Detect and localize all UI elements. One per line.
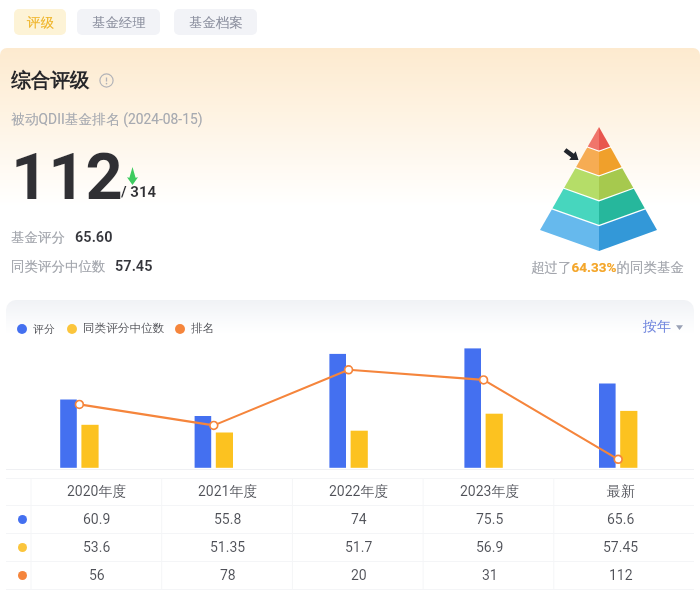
staticText: 评分 <box>33 322 55 336</box>
staticText: / 314 <box>121 183 157 201</box>
staticText: 2022年度 <box>329 483 389 501</box>
staticText: 排名 <box>191 321 215 336</box>
button[interactable]: 51.35 <box>162 533 293 561</box>
staticText: 51.35 <box>210 539 246 555</box>
staticText: 78 <box>220 567 236 583</box>
staticText: 综合评级 <box>11 68 89 93</box>
button[interactable]: 56 <box>31 561 162 589</box>
staticText: 112 <box>609 567 633 583</box>
staticText: 最新 <box>607 483 635 501</box>
staticText: 65.60 <box>75 229 113 246</box>
staticText: 超过了64.33%的同类基金 <box>531 259 684 276</box>
button[interactable]: 56.9 <box>424 533 555 561</box>
staticText: 57.45 <box>115 258 153 275</box>
button[interactable]: 20 <box>293 561 424 589</box>
button[interactable]: 75.5 <box>424 505 555 533</box>
staticText: 31 <box>482 567 498 583</box>
staticText: 53.6 <box>83 539 111 555</box>
staticText: 75.5 <box>476 511 504 527</box>
staticText: 20 <box>351 567 367 583</box>
button[interactable]: 按年 <box>643 318 683 336</box>
staticText: 56 <box>89 567 105 583</box>
button[interactable]: 57.45 <box>555 533 686 561</box>
staticText: 同类评分中位数 <box>11 258 106 275</box>
staticText: 基金档案 <box>189 14 243 31</box>
button[interactable]: 74 <box>293 505 424 533</box>
staticText: 评级 <box>27 14 54 31</box>
staticText: 56.9 <box>476 539 504 555</box>
staticText: 60.9 <box>83 511 111 527</box>
other: More information <box>99 73 114 88</box>
staticText: 基金评分 <box>11 229 65 246</box>
button[interactable]: 65.6 <box>555 505 686 533</box>
staticText: 55.8 <box>214 511 242 527</box>
button[interactable]: 31 <box>424 561 555 589</box>
button[interactable]: 评级 <box>14 9 66 35</box>
staticText: 被动QDII基金排名 (2024-08-15) <box>11 111 203 128</box>
staticText: 2020年度 <box>67 483 127 501</box>
button[interactable]: 51.7 <box>293 533 424 561</box>
button[interactable]: 基金档案 <box>174 9 257 35</box>
staticText: 74 <box>351 511 367 527</box>
button[interactable]: 78 <box>162 561 293 589</box>
staticText: 按年 <box>643 318 671 336</box>
button[interactable]: 60.9 <box>31 505 162 533</box>
button[interactable]: 55.8 <box>162 505 293 533</box>
button[interactable]: 53.6 <box>31 533 162 561</box>
button[interactable]: 112 <box>555 561 686 589</box>
staticText: 112 <box>11 139 123 215</box>
staticText: 51.7 <box>345 539 373 555</box>
button[interactable]: 基金经理 <box>77 9 160 35</box>
staticText: 基金经理 <box>92 14 146 31</box>
staticText: 2023年度 <box>460 483 520 501</box>
staticText: 2021年度 <box>198 483 258 501</box>
staticText: 57.45 <box>603 539 639 555</box>
staticText: 同类评分中位数 <box>83 321 165 336</box>
staticText: 65.6 <box>607 511 635 527</box>
